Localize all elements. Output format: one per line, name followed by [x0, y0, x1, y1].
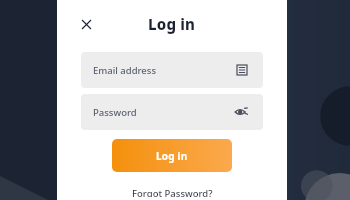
staticText: Forgot Password? — [132, 187, 213, 197]
button[interactable]: Email address — [81, 52, 263, 88]
staticText: Password — [93, 106, 231, 119]
button[interactable]: Show password — [231, 102, 251, 122]
button[interactable]: Scan card — [233, 61, 251, 79]
staticText: Log in — [148, 14, 196, 34]
staticText: Email address — [93, 64, 233, 77]
button[interactable]: Forgot Password? — [126, 184, 219, 200]
button[interactable]: Log in — [112, 139, 232, 172]
staticText: Log in — [156, 149, 188, 163]
button[interactable]: Close — [75, 13, 97, 35]
button[interactable]: Password — [81, 94, 263, 130]
